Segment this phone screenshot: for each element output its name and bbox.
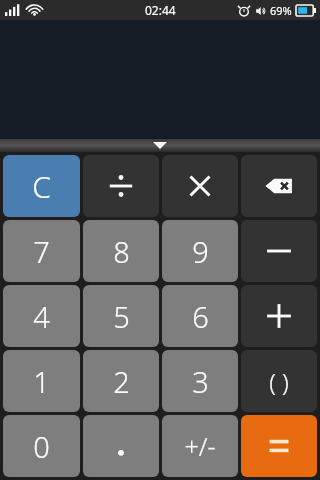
staticText: 5 [113,297,130,336]
staticText: 4 [33,297,50,336]
staticText: 1 [33,362,50,401]
staticText: +/- [184,429,216,463]
button[interactable]: +/- [162,415,238,477]
staticText: 0 [33,427,50,466]
staticText: ( ) [269,365,289,398]
button[interactable]: 3 [162,350,238,412]
button[interactable]: Divide [83,155,159,217]
button[interactable]: 6 [162,285,238,347]
button[interactable]: 9 [162,220,238,282]
staticText: C [32,166,51,207]
button[interactable]: 8 [83,220,159,282]
staticText: 8 [113,232,130,271]
button[interactable]: 7 [3,220,80,282]
button[interactable]: ( ) [241,350,317,412]
staticText: 6 [192,297,209,336]
button[interactable]: C [3,155,80,217]
staticText: 69% [270,3,292,18]
button[interactable]: 0 [3,415,80,477]
staticText: 3 [192,362,209,401]
button[interactable]: 1 [3,350,80,412]
staticText: 9 [192,232,209,271]
button[interactable]: Decimal point [83,415,159,477]
staticText: 2 [113,362,130,401]
button[interactable]: Plus [241,285,317,347]
staticText: 02:44 [145,2,176,18]
button[interactable]: 5 [83,285,159,347]
staticText: 7 [33,232,50,271]
button[interactable]: 2 [83,350,159,412]
button[interactable]: Minus [241,220,317,282]
button[interactable]: Multiply [162,155,238,217]
button[interactable]: 4 [3,285,80,347]
button[interactable]: Equals [241,415,317,477]
button[interactable]: Backspace [241,155,317,217]
